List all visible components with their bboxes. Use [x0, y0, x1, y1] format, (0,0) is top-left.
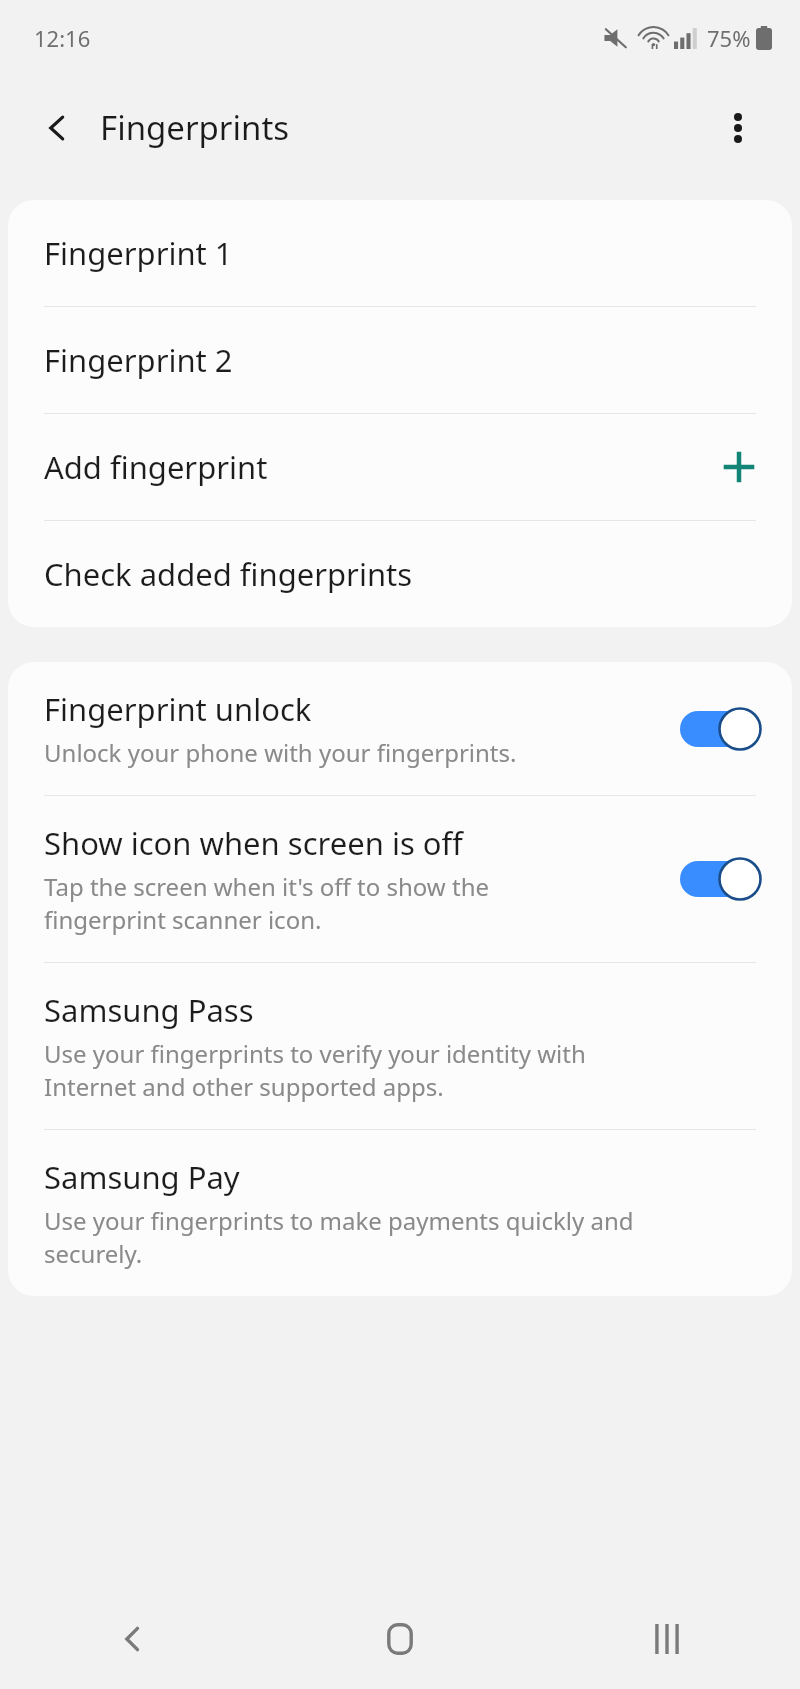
- staticText: Fingerprint 1: [44, 232, 756, 274]
- button[interactable]: Recents: [533, 1589, 800, 1689]
- button[interactable]: Check added fingerprints: [8, 521, 792, 627]
- staticText: Show icon when screen is off: [44, 822, 463, 864]
- button[interactable]: Fingerprint 1: [8, 200, 792, 306]
- staticText: Samsung Pay: [44, 1156, 240, 1198]
- staticText: Internet and other supported apps.: [44, 1070, 444, 1103]
- staticText: Use your fingerprints to verify your ide…: [44, 1037, 586, 1070]
- button[interactable]: Back: [0, 1589, 266, 1689]
- staticText: Fingerprints: [100, 105, 290, 150]
- staticText: Add fingerprint: [44, 446, 722, 488]
- button[interactable]: Back: [30, 100, 86, 156]
- staticText: Fingerprint 2: [44, 339, 756, 381]
- staticText: Samsung Pass: [44, 989, 254, 1031]
- staticText: Unlock your phone with your fingerprints…: [44, 736, 517, 769]
- button[interactable]: Add fingerprint: [8, 414, 792, 520]
- button[interactable]: Fingerprint 2: [8, 307, 792, 413]
- staticText: Check added fingerprints: [44, 553, 756, 595]
- staticText: Tap the screen when it's off to show the: [44, 870, 490, 903]
- staticText: Use your fingerprints to make payments q…: [44, 1204, 634, 1237]
- button[interactable]: Samsung Pay: [8, 1130, 792, 1296]
- staticText: Fingerprint unlock: [44, 688, 312, 730]
- button[interactable]: More options: [712, 102, 764, 154]
- staticText: 12:16: [34, 23, 91, 53]
- button[interactable]: Fingerprint unlock: [8, 662, 792, 795]
- button[interactable]: Show icon when screen is off: [8, 796, 792, 962]
- staticText: fingerprint scanner icon.: [44, 903, 322, 936]
- button[interactable]: Samsung Pass: [8, 963, 792, 1129]
- button[interactable]: Home: [266, 1589, 533, 1689]
- button[interactable]: Toggle: [680, 857, 762, 901]
- staticText: securely.: [44, 1237, 143, 1270]
- button[interactable]: Toggle: [680, 707, 762, 751]
- staticText: 75%: [707, 23, 751, 53]
